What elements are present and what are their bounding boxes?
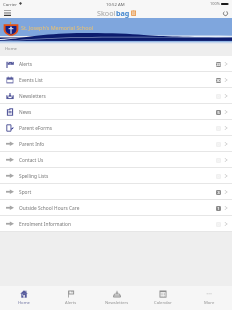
staticText: bag <box>116 8 130 18</box>
staticText: Spelling Lists <box>19 173 49 180</box>
button[interactable]: Events List <box>0 72 232 88</box>
staticText: 10:52 AM <box>106 1 125 7</box>
button[interactable]: News <box>0 104 232 120</box>
button[interactable]: Parent eForms <box>0 120 232 136</box>
button[interactable]: Home <box>0 286 47 310</box>
button[interactable]: Sport <box>0 184 232 200</box>
staticText: Home <box>18 300 30 306</box>
staticText: Skool <box>97 8 116 18</box>
staticText: Events List <box>19 77 43 84</box>
staticText: Alerts <box>65 300 77 306</box>
button[interactable]: Contact Us <box>0 152 232 168</box>
staticText: Home <box>5 46 17 52</box>
button[interactable]: Enrolment Information <box>0 216 232 232</box>
staticText: Contact Us <box>19 157 44 164</box>
staticText: St. Joseph's Memorial School <box>21 24 94 31</box>
button[interactable]: Alerts <box>47 286 94 310</box>
staticText: 100% <box>210 1 220 6</box>
staticText: Outside School Hours Care <box>19 205 80 212</box>
staticText: More <box>204 300 215 306</box>
button[interactable]: Spelling Lists <box>0 168 232 184</box>
staticText: Enrolment Information <box>19 221 71 228</box>
staticText: Newsletters <box>105 300 129 306</box>
staticText: 22 <box>216 62 221 67</box>
button[interactable]: Menu <box>1 8 13 18</box>
button[interactable]: Calendar <box>140 286 186 310</box>
staticText: News <box>19 109 32 116</box>
staticText: Sport <box>19 189 32 196</box>
button[interactable]: Outside School Hours Care <box>0 200 232 216</box>
button[interactable]: Newsletters <box>94 286 140 310</box>
staticText: Alerts <box>19 61 33 68</box>
staticText: 30 <box>216 78 221 83</box>
staticText: 3 <box>217 190 220 195</box>
staticText: 1 <box>217 206 220 211</box>
staticText: Newsletters <box>19 93 46 100</box>
staticText: 5 <box>217 110 220 115</box>
button[interactable]: More <box>186 286 232 310</box>
button[interactable]: Alerts <box>0 56 232 72</box>
button[interactable]: Parent Info <box>0 136 232 152</box>
staticText: Parent eForms <box>19 125 52 132</box>
button[interactable]: Newsletters <box>0 88 232 104</box>
staticText: Carrier <box>3 1 17 7</box>
button[interactable]: Refresh <box>220 8 230 18</box>
staticText: Parent Info <box>19 141 45 148</box>
staticText: Calendar <box>154 300 172 306</box>
